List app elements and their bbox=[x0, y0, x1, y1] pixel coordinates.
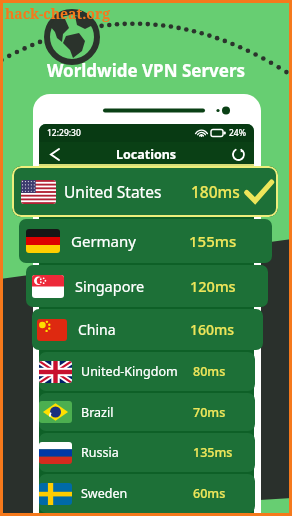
staticText: Sweden bbox=[81, 485, 128, 502]
button[interactable]: Singapore bbox=[26, 265, 268, 307]
staticText: 155ms bbox=[189, 231, 237, 251]
button[interactable]: Refresh bbox=[230, 146, 247, 163]
button[interactable]: China bbox=[32, 309, 263, 350]
staticText: United-Kingdom bbox=[81, 363, 178, 380]
button[interactable]: Russia bbox=[39, 433, 255, 472]
staticText: Worldwide VPN Servers bbox=[0, 59, 292, 82]
button[interactable]: Germany bbox=[19, 219, 272, 263]
button[interactable]: Brazil bbox=[39, 393, 255, 431]
staticText: Locations bbox=[116, 146, 177, 163]
staticText: 12:29:30 bbox=[47, 127, 81, 139]
button[interactable]: United States bbox=[12, 166, 278, 217]
staticText: Singapore bbox=[75, 276, 145, 296]
button[interactable]: Sweden bbox=[39, 474, 255, 513]
staticText: United States bbox=[64, 181, 162, 202]
staticText: 180ms bbox=[191, 181, 240, 202]
staticText: 120ms bbox=[190, 276, 236, 296]
staticText: hack-cheat.org bbox=[5, 4, 111, 23]
button[interactable]: Back bbox=[46, 146, 63, 163]
staticText: Russia bbox=[81, 444, 119, 461]
staticText: 135ms bbox=[193, 444, 233, 461]
staticText: 60ms bbox=[193, 485, 226, 502]
staticText: 24% bbox=[229, 127, 246, 139]
staticText: Brazil bbox=[81, 404, 114, 421]
staticText: China bbox=[78, 320, 116, 339]
staticText: 80ms bbox=[193, 363, 226, 380]
button[interactable]: United-Kingdom bbox=[39, 352, 255, 391]
staticText: 160ms bbox=[190, 320, 235, 339]
staticText: Germany bbox=[71, 231, 136, 251]
staticText: 70ms bbox=[193, 404, 226, 421]
